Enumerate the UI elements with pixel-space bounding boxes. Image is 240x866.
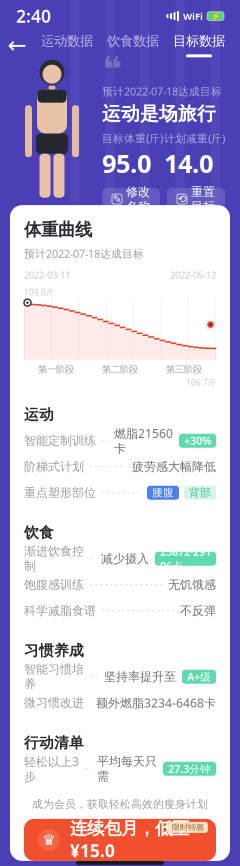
staticText: 腰腹 <box>152 486 174 499</box>
staticText: 额外燃脂3234-6468卡 <box>96 695 216 711</box>
staticText: 阶梯式计划 <box>24 459 84 474</box>
staticText: 微习惯改进 <box>24 695 84 710</box>
staticText: 预计2022-07-18达成目标 <box>102 84 222 98</box>
staticText: 饮食数据 <box>107 33 159 49</box>
staticText: 14.0 <box>164 146 213 180</box>
button[interactable]: ♛ <box>24 819 216 861</box>
staticText: 饱腹感训练 <box>24 577 84 592</box>
staticText: 行动清单 <box>24 734 84 752</box>
staticText: 95.0 <box>102 146 151 180</box>
staticText: 轻松以上3步 <box>24 753 79 784</box>
staticText: 25872-29106卡 <box>160 545 211 573</box>
staticText: 2022-05-12 <box>170 269 216 281</box>
staticText: 习惯养成 <box>24 642 84 660</box>
staticText: 计划减重(斤) <box>164 131 225 145</box>
staticText: 成为会员，获取轻松高效的瘦身计划 <box>32 798 208 811</box>
staticText: 目标体重(斤) <box>102 131 163 145</box>
staticText: 预计2022-07-18达成目标 <box>24 246 144 261</box>
staticText: 27.3分钟 <box>168 762 211 776</box>
staticText: 目标数据 <box>173 33 225 49</box>
staticText: 燃脂21560卡 <box>114 425 173 456</box>
staticText: 无饥饿感 <box>168 577 216 592</box>
staticText: 科学减脂食谱 <box>24 603 96 618</box>
staticText: 第三阶段 <box>166 364 202 375</box>
staticText: ⚡ <box>210 12 220 21</box>
button[interactable]: ⟲ <box>167 188 225 210</box>
staticText: 第一阶段 <box>38 364 74 375</box>
staticText: +30% <box>184 434 211 448</box>
staticText: 运动数据 <box>41 33 93 49</box>
staticText: 重置目标 <box>191 184 215 214</box>
staticText: 疲劳感大幅降低 <box>132 459 216 474</box>
staticText: 第二阶段 <box>102 364 138 375</box>
staticText: 不反弹 <box>180 603 216 618</box>
staticText: 修改名称 <box>126 184 150 214</box>
staticText: 渐进饮食控制 <box>24 544 84 573</box>
staticText: 坚持率提升至 <box>104 669 176 684</box>
staticText: 体重曲线 <box>24 219 92 240</box>
staticText: 运动 <box>24 406 54 424</box>
staticText: 106.7斤 <box>186 377 216 388</box>
staticText: 重点塑形部位 <box>24 485 96 500</box>
staticText: 饮食 <box>24 524 54 542</box>
staticText: ❝ <box>102 49 122 89</box>
staticText: 运动是场旅行 <box>102 102 216 125</box>
button[interactable]: 目标数据 <box>166 33 232 57</box>
staticText: 智能定制训练 <box>24 433 96 448</box>
staticText: 背部 <box>189 486 211 499</box>
staticText: WiFi <box>183 10 203 22</box>
staticText: 2:40 <box>16 5 51 28</box>
staticText: 连续包月，低至¥15.0 <box>70 818 189 862</box>
staticText: ✎ <box>112 193 121 205</box>
staticText: 109.0斤 <box>24 287 54 298</box>
button[interactable]: 返回 <box>0 28 34 62</box>
staticText: 平均每天只需 <box>97 754 157 783</box>
staticText: A+级 <box>187 670 211 684</box>
staticText: ← <box>7 32 26 58</box>
button[interactable]: 运动数据 <box>34 33 100 57</box>
staticText: 限时特惠 <box>172 822 204 832</box>
button[interactable]: 饮食数据 <box>100 33 166 57</box>
staticText: 减少摄入 <box>101 551 149 566</box>
button[interactable]: ✎ <box>102 188 160 210</box>
staticText: ♛ <box>42 831 55 848</box>
staticText: 2022-03-11 <box>24 269 70 281</box>
staticText: 智能习惯培养 <box>24 662 84 691</box>
staticText: ⟲ <box>177 193 186 205</box>
